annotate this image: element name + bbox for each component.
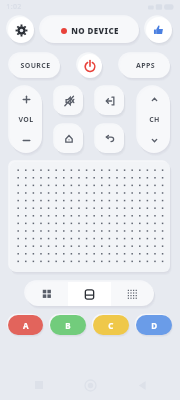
staticText: VOL (18, 115, 34, 125)
button[interactable]: CH (138, 87, 170, 153)
button[interactable]: D (136, 315, 172, 335)
button[interactable]: Touchpad (10, 162, 170, 272)
button[interactable]: APPS (120, 54, 170, 78)
button[interactable]: Number pad (111, 282, 154, 306)
button[interactable]: Back (96, 125, 124, 153)
button[interactable]: A (8, 315, 43, 335)
staticText: B (65, 320, 71, 331)
button[interactable]: NO DEVICE (41, 17, 139, 43)
button[interactable]: Settings (8, 17, 34, 43)
button[interactable]: Touchpad mode (68, 282, 111, 306)
staticText: C (108, 320, 114, 331)
staticText: SOURCE (20, 61, 51, 71)
button[interactable]: Power (78, 54, 102, 78)
button[interactable]: VOL (10, 87, 42, 153)
staticText: D (151, 320, 158, 331)
button[interactable]: Apps grid (26, 282, 68, 306)
staticText: CH (149, 115, 160, 125)
button[interactable]: SOURCE (10, 54, 60, 78)
button[interactable]: B (50, 315, 86, 335)
staticText: A (23, 320, 29, 331)
button[interactable]: Exit (96, 87, 124, 115)
button[interactable]: Home (55, 125, 83, 153)
button[interactable]: Apps grid (26, 282, 154, 306)
button[interactable]: Mute (55, 87, 83, 115)
button[interactable]: C (93, 315, 129, 335)
staticText: 1:02 (6, 2, 22, 12)
staticText: APPS (136, 61, 155, 71)
staticText: NO DEVICE (71, 25, 119, 36)
button[interactable]: Favorite (146, 17, 172, 43)
